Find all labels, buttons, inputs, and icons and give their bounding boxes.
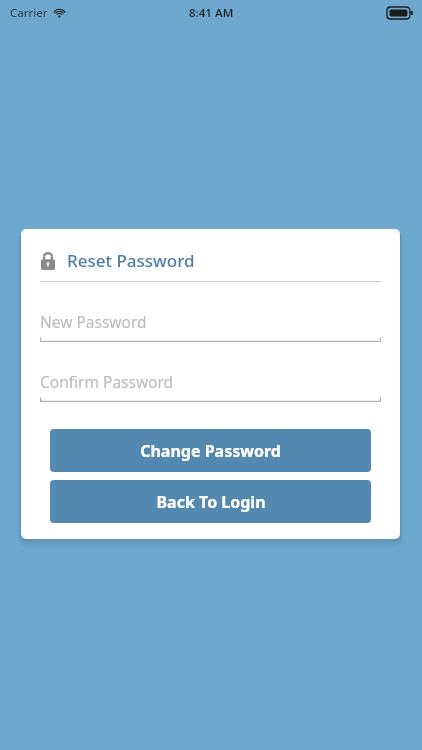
button[interactable]: Change Password xyxy=(50,429,371,472)
staticText: Carrier xyxy=(10,5,48,21)
button[interactable]: New Password xyxy=(40,311,381,342)
staticText: Reset Password xyxy=(67,249,195,272)
button[interactable]: Back To Login xyxy=(50,480,371,523)
button[interactable]: Confirm Password xyxy=(40,371,381,402)
staticText: Confirm Password xyxy=(40,371,174,392)
staticText: Back To Login xyxy=(156,491,266,513)
staticText: New Password xyxy=(40,311,147,332)
staticText: 8:41 AM xyxy=(189,5,234,21)
staticText: Change Password xyxy=(140,440,281,462)
